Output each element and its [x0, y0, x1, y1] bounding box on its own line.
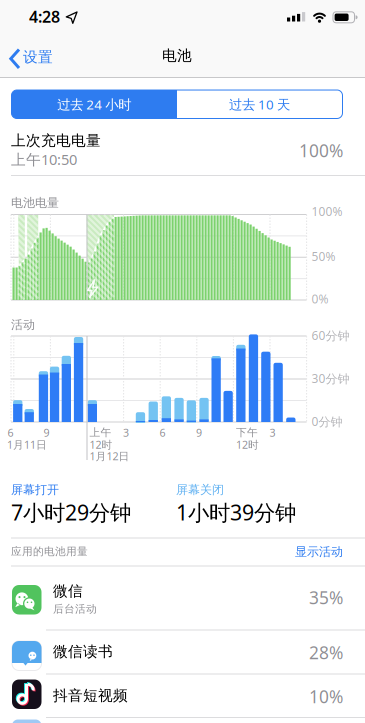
staticText: 9 [196, 425, 202, 440]
button[interactable]: 微信 [0, 566, 365, 629]
staticText: 过去 24 小时 [57, 95, 131, 113]
button[interactable]: 微信读书 [0, 630, 365, 673]
staticText: 1小时39分钟 [176, 498, 296, 526]
staticText: 微信 [53, 582, 83, 600]
staticText: 35% [309, 586, 343, 609]
staticText: 0分钟 [311, 413, 342, 429]
button[interactable]: 抖音短视频 [0, 674, 365, 717]
staticText: 微信读书 [53, 642, 113, 660]
staticText: 50% [311, 248, 335, 264]
staticText: 9 [43, 425, 49, 440]
staticText: 上午 [89, 426, 111, 439]
staticText: 显示活动 [295, 544, 343, 559]
staticText: 7小时29分钟 [11, 498, 131, 526]
staticText: 屏幕关闭 [176, 482, 224, 497]
staticText: 3 [123, 425, 129, 440]
staticText: 0% [311, 291, 328, 307]
button[interactable]: 过去 24 小时 [11, 90, 177, 118]
button[interactable]: 返回设置 [0, 44, 62, 74]
staticText: 12时 [236, 437, 259, 452]
staticText: 电池电量 [11, 195, 59, 210]
staticText: 100% [299, 139, 343, 162]
staticText: 3 [269, 425, 275, 440]
staticText: 4:28 [29, 6, 60, 27]
staticText: 活动 [11, 317, 35, 332]
button[interactable]: 显示活动 [295, 544, 343, 559]
staticText: 屏幕打开 [11, 482, 59, 497]
staticText: 抖音短视频 [53, 686, 128, 704]
staticText: 6 [159, 425, 165, 440]
staticText: 1月11日 [7, 437, 47, 452]
staticText: 12时 [89, 437, 112, 452]
staticText: 100% [311, 203, 342, 219]
staticText: 60分钟 [311, 327, 349, 343]
staticText: 过去 10 天 [229, 95, 290, 113]
staticText: 应用的电池用量 [11, 545, 88, 558]
staticText: 后台活动 [53, 602, 97, 616]
staticText: 1月12日 [89, 449, 129, 463]
staticText: 10% [309, 685, 343, 708]
staticText: 电池 [162, 46, 192, 64]
button[interactable]: 过去 10 天 [177, 90, 342, 118]
staticText: 28% [309, 641, 343, 664]
staticText: 上次充电电量 [11, 131, 101, 149]
staticText: 30分钟 [311, 370, 349, 386]
staticText: 上午10:50 [11, 149, 77, 169]
staticText: 设置 [23, 48, 53, 66]
staticText: 6 [7, 425, 13, 440]
staticText: 下午 [236, 426, 258, 439]
